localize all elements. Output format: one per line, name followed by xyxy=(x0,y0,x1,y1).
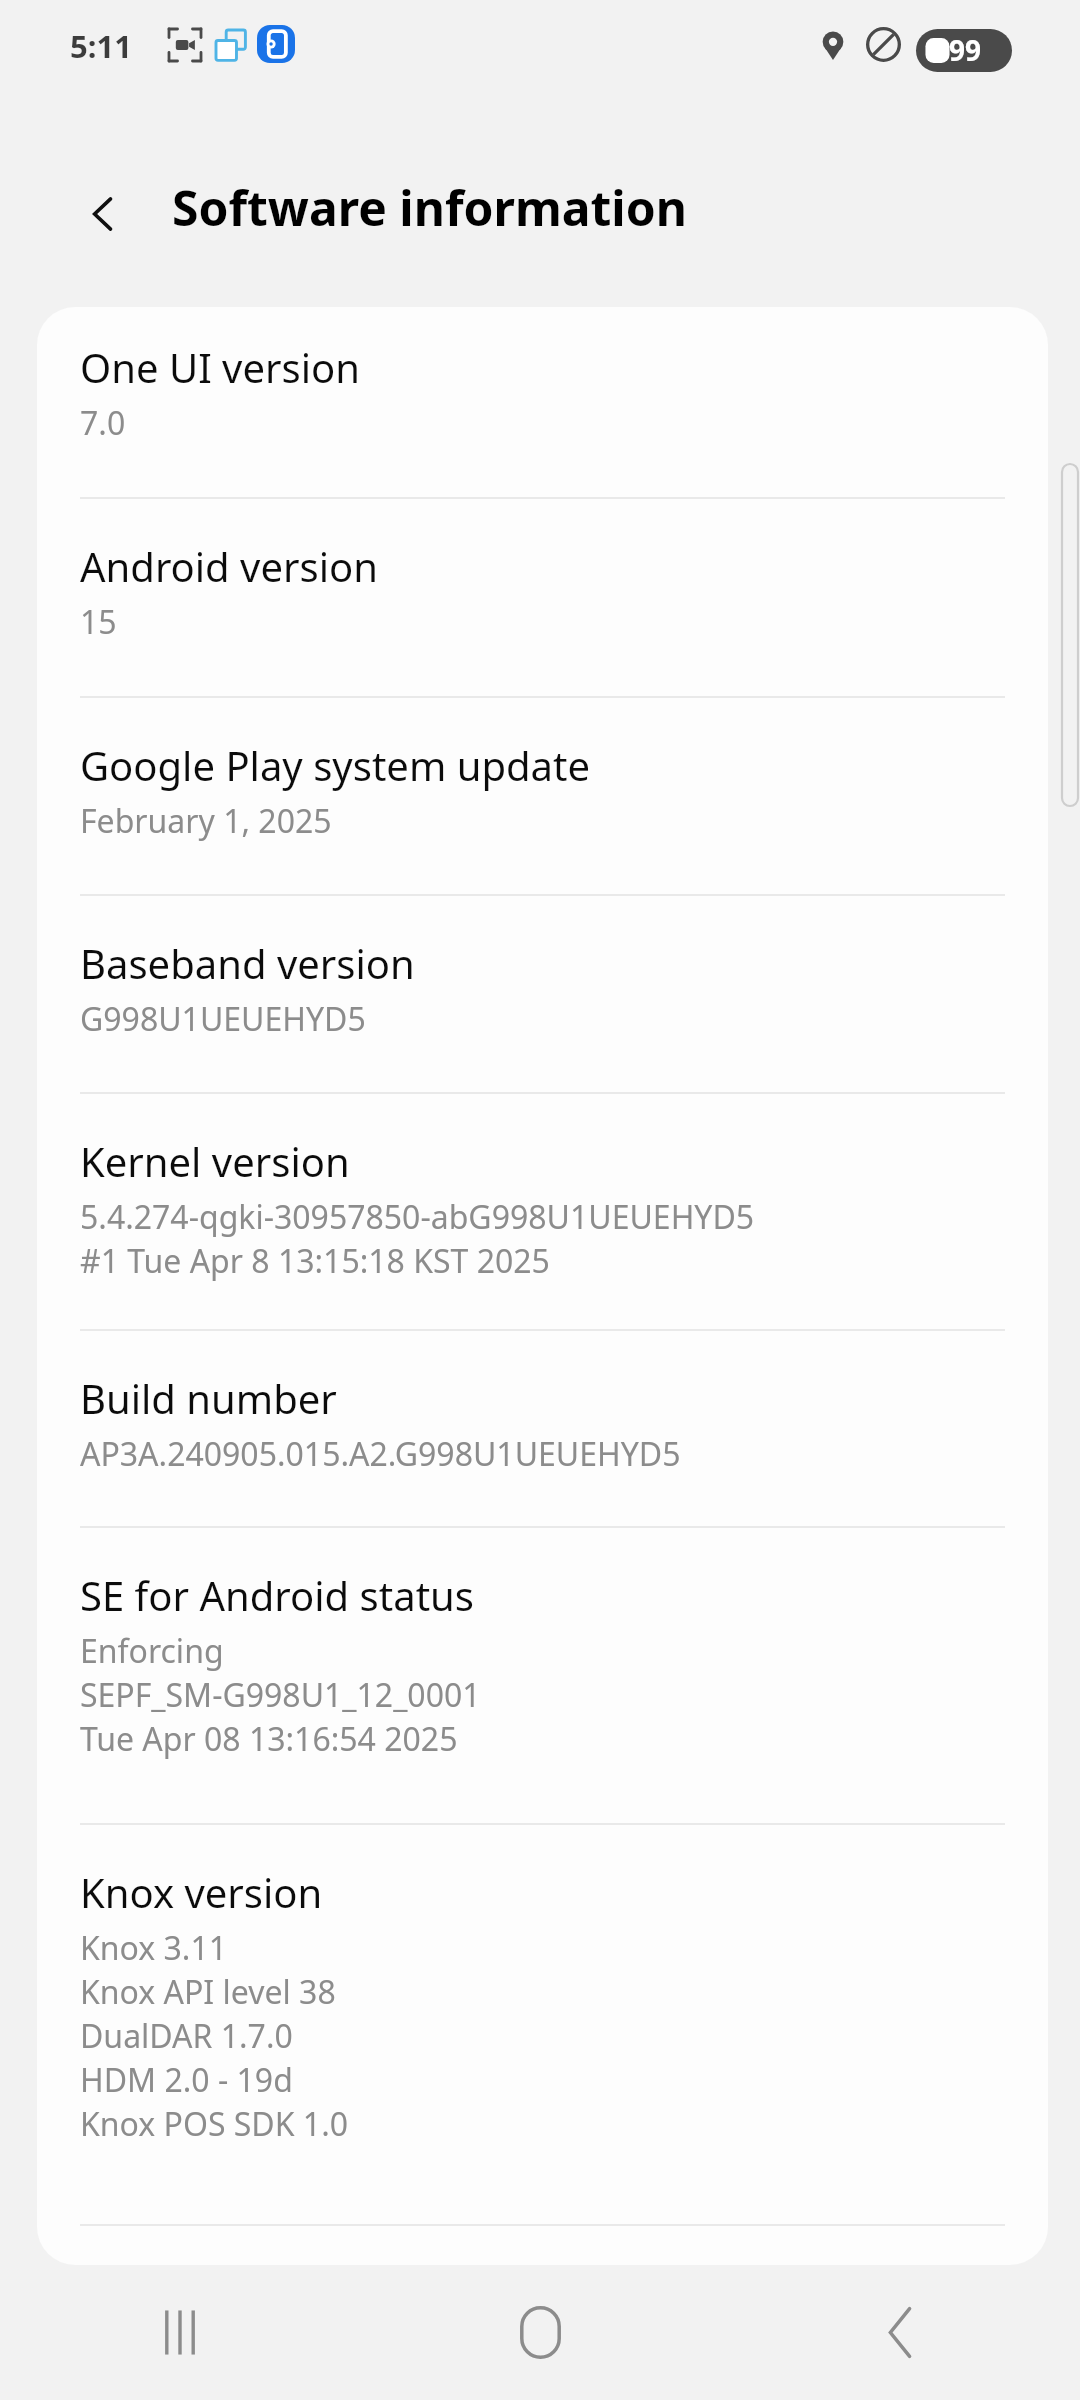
staticText: 99 xyxy=(949,31,982,69)
staticText: One UI version xyxy=(80,340,360,394)
staticText: #1 Tue Apr 8 13:15:18 KST 2025 xyxy=(80,1239,550,1283)
staticText: February 1, 2025 xyxy=(80,799,332,843)
staticText: G998U1UEUEHYD5 xyxy=(80,997,366,1041)
button[interactable]: Build number xyxy=(37,1331,1048,1526)
button[interactable]: Baseband version xyxy=(37,896,1048,1092)
staticText: Kernel version xyxy=(80,1134,350,1188)
staticText: Software information xyxy=(172,175,687,240)
button[interactable]: Knox version xyxy=(37,1825,1048,2224)
staticText: 7.0 xyxy=(80,401,126,445)
button[interactable]: Google Play system update xyxy=(37,698,1048,894)
staticText: AP3A.240905.015.A2.G998U1UEUEHYD5 xyxy=(80,1432,681,1476)
staticText: HDM 2.0 - 19d xyxy=(80,2058,293,2102)
staticText: DualDAR 1.7.0 xyxy=(80,2014,293,2058)
staticText: Knox version xyxy=(80,1865,323,1919)
button[interactable]: Android version xyxy=(37,499,1048,696)
staticText: SE for Android status xyxy=(80,1568,474,1622)
staticText: Knox POS SDK 1.0 xyxy=(80,2102,349,2146)
staticText: Baseband version xyxy=(80,936,415,990)
staticText: Build number xyxy=(80,1371,337,1425)
staticText: Enforcing xyxy=(80,1629,224,1673)
staticText: Tue Apr 08 13:16:54 2025 xyxy=(80,1717,458,1761)
staticText: Knox 3.11 xyxy=(80,1926,228,1970)
staticText: Knox API level 38 xyxy=(80,1970,336,2014)
button[interactable]: One UI version xyxy=(37,307,1048,497)
button[interactable]: Back xyxy=(720,2265,1080,2400)
button[interactable]: Home xyxy=(360,2265,720,2400)
button[interactable]: SE for Android status xyxy=(37,1528,1048,1823)
button[interactable]: Recent apps xyxy=(0,2265,360,2400)
staticText: 5.4.274-qgki-30957850-abG998U1UEUEHYD5 xyxy=(80,1195,755,1239)
staticText: Android version xyxy=(80,539,378,593)
staticText: Google Play system update xyxy=(80,738,591,792)
button[interactable]: Navigate up xyxy=(61,172,145,256)
staticText: 5:11 xyxy=(70,25,132,67)
staticText: SEPF_SM-G998U1_12_0001 xyxy=(80,1673,481,1717)
button[interactable]: Kernel version xyxy=(37,1094,1048,1329)
staticText: 15 xyxy=(80,600,117,644)
